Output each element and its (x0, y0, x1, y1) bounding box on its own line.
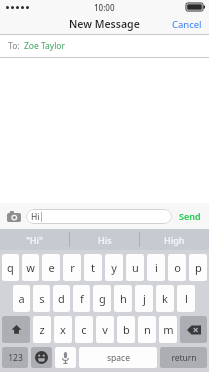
button[interactable]: Backspace (180, 316, 207, 343)
staticText: 10:00 (94, 2, 115, 13)
staticText: 123 (8, 352, 23, 364)
staticText: His (98, 234, 112, 246)
button[interactable]: d (53, 285, 70, 312)
button[interactable]: p (189, 254, 207, 281)
staticText: space (107, 352, 130, 364)
staticText: i (155, 260, 158, 275)
staticText: h (120, 291, 127, 306)
staticText: Send (179, 210, 201, 222)
staticText: s (39, 291, 45, 306)
button[interactable]: v (96, 316, 114, 343)
button[interactable]: m (159, 316, 177, 343)
button[interactable]: Camera (5, 208, 22, 225)
button[interactable]: His (70, 229, 139, 250)
button[interactable]: e (42, 254, 60, 281)
staticText: x (60, 322, 66, 337)
staticText: "Hi" (26, 234, 43, 246)
staticText: v (102, 322, 108, 337)
button[interactable]: i (147, 254, 165, 281)
staticText: y (111, 260, 117, 275)
button[interactable]: u (126, 254, 144, 281)
button[interactable]: z (33, 316, 51, 343)
button[interactable]: s (33, 285, 50, 312)
button[interactable]: t (84, 254, 102, 281)
button[interactable]: x (54, 316, 72, 343)
button[interactable]: a (13, 285, 30, 312)
button[interactable]: To: (0, 35, 209, 57)
button[interactable]: k (156, 285, 174, 312)
staticText: d (58, 291, 65, 306)
staticText: n (144, 322, 151, 337)
button[interactable]: y (105, 254, 123, 281)
staticText: b (123, 322, 130, 337)
staticText: t (91, 260, 95, 275)
staticText: g (99, 291, 106, 306)
staticText: Hi (31, 211, 40, 223)
button[interactable]: Emoji (31, 347, 52, 368)
staticText: z (39, 322, 45, 337)
button[interactable]: n (138, 316, 156, 343)
staticText: r (70, 260, 75, 275)
staticText: o (174, 260, 181, 275)
button[interactable]: space (79, 347, 157, 368)
button[interactable]: "Hi" (0, 229, 69, 250)
staticText: New Message (69, 17, 140, 31)
button[interactable]: High (140, 229, 209, 250)
button[interactable]: o (168, 254, 186, 281)
staticText: u (132, 260, 139, 275)
button[interactable]: b (117, 316, 135, 343)
button[interactable]: Cancel (165, 15, 209, 34)
button[interactable]: 123 (2, 347, 28, 368)
staticText: To: (8, 40, 20, 52)
button[interactable]: Send (176, 206, 204, 226)
staticText: High (164, 234, 185, 246)
staticText: return (171, 352, 197, 364)
button[interactable]: Hi (26, 209, 172, 224)
button[interactable]: g (93, 285, 111, 312)
button[interactable]: f (73, 285, 90, 312)
staticText: m (163, 322, 174, 337)
staticText: k (162, 291, 168, 306)
staticText: c (81, 322, 87, 337)
staticText: f (80, 291, 84, 306)
button[interactable]: h (114, 285, 132, 312)
button[interactable]: l (177, 285, 195, 312)
staticText: p (195, 260, 202, 275)
staticText: Cancel (172, 18, 202, 31)
staticText: e (48, 260, 55, 275)
staticText: Zoe Taylor (24, 40, 66, 52)
button[interactable]: q (2, 254, 19, 281)
button[interactable]: c (75, 316, 93, 343)
staticText: j (143, 291, 146, 306)
button[interactable]: r (63, 254, 81, 281)
staticText: l (185, 291, 188, 306)
button[interactable]: Shift (2, 316, 30, 343)
staticText: q (7, 260, 14, 275)
button[interactable]: return (160, 347, 207, 368)
button[interactable]: j (135, 285, 153, 312)
staticText: a (18, 291, 25, 306)
staticText: w (26, 260, 35, 275)
button[interactable]: w (22, 254, 39, 281)
button[interactable]: Dictation (55, 347, 76, 368)
